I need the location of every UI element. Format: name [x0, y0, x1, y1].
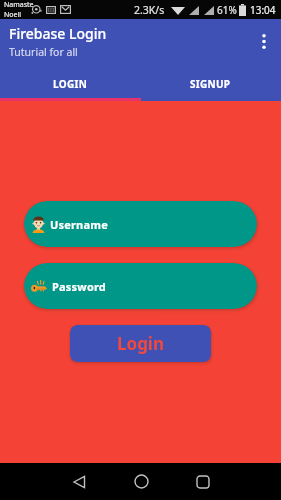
staticText: Password	[52, 279, 107, 294]
staticText: Username	[50, 217, 108, 232]
button[interactable]: LOGIN	[0, 66, 140, 101]
staticText: 2.3K/s	[134, 3, 165, 17]
staticText: Firebase Login	[9, 24, 107, 43]
button[interactable]: Back	[60, 463, 98, 500]
button[interactable]: Login	[70, 325, 211, 362]
staticText: Namaste	[4, 0, 34, 10]
staticText: Noell	[4, 10, 22, 19]
staticText: 13:04	[250, 3, 276, 17]
button[interactable]: SIGNUP	[140, 66, 281, 101]
staticText: LOGIN	[53, 77, 88, 91]
button[interactable]: Username	[24, 201, 257, 247]
staticText: Tuturial for all	[9, 45, 78, 59]
button[interactable]: Password	[24, 263, 257, 309]
button[interactable]: Home	[122, 463, 160, 500]
staticText: SIGNUP	[190, 77, 231, 91]
button[interactable]: More options	[252, 29, 276, 53]
staticText: 61%	[217, 3, 237, 17]
staticText: Login	[117, 332, 165, 355]
button[interactable]: Recent apps	[184, 463, 222, 500]
